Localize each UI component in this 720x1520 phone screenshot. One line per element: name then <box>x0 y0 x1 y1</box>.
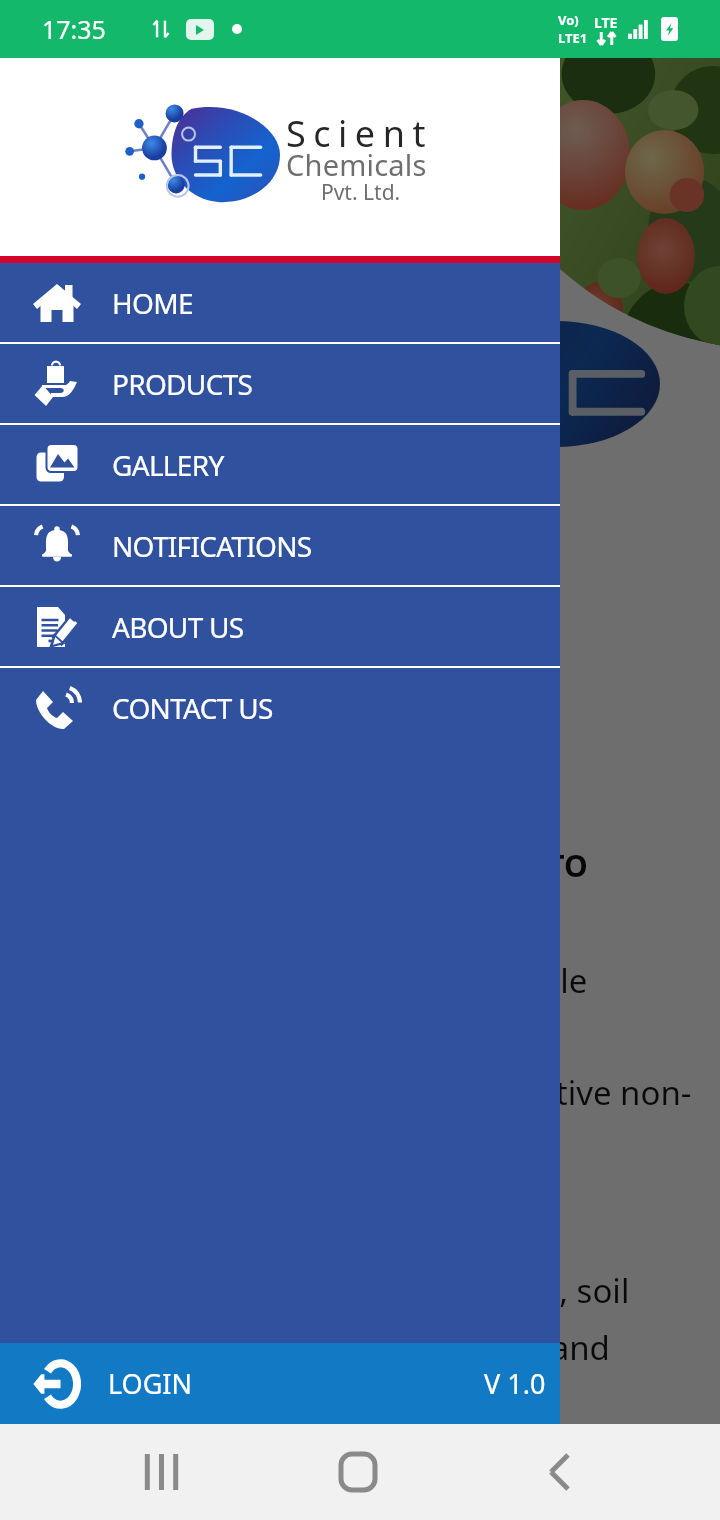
button[interactable]: PRODUCTS <box>0 344 560 423</box>
staticText: GALLERY <box>112 446 224 484</box>
button[interactable]: CONTACT US <box>0 668 560 747</box>
button[interactable]: HOME <box>0 263 560 342</box>
staticText: Vo) <box>558 11 579 29</box>
button[interactable]: Back <box>527 1440 591 1504</box>
staticText: We are one of the reliable <box>190 958 588 1003</box>
staticText: Scient <box>286 109 433 158</box>
staticText: LOGIN <box>108 1365 193 1402</box>
button[interactable]: LOGIN <box>0 1343 560 1424</box>
button[interactable]: Home <box>326 1440 390 1504</box>
staticText: V 1.0 <box>484 1365 546 1402</box>
staticText: products for agriculture, soil <box>190 1268 630 1313</box>
staticText: LTE <box>594 13 618 32</box>
button[interactable]: ABOUT US <box>0 587 560 666</box>
button[interactable]: NOTIFICATIONS <box>0 506 560 585</box>
staticText: ABOUT US <box>112 608 244 646</box>
staticText: NOTIFICATIONS <box>112 527 312 565</box>
staticText: manufacturer of innovative non- <box>190 1070 692 1115</box>
button[interactable]: GALLERY <box>0 425 560 504</box>
staticText: Chemicals <box>286 145 427 184</box>
staticText: Pvt. Ltd. <box>321 178 401 207</box>
staticText: 17:35 <box>42 12 106 46</box>
staticText: PRODUCTS <box>112 365 253 403</box>
button[interactable]: Recents <box>129 1440 193 1504</box>
staticText: CONTACT US <box>112 689 273 727</box>
staticText: WELCOME TO <box>390 845 588 886</box>
staticText: LTE1 <box>558 29 588 47</box>
staticText: nutrition, plant growth and <box>190 1325 610 1370</box>
staticText: HOME <box>112 284 193 322</box>
